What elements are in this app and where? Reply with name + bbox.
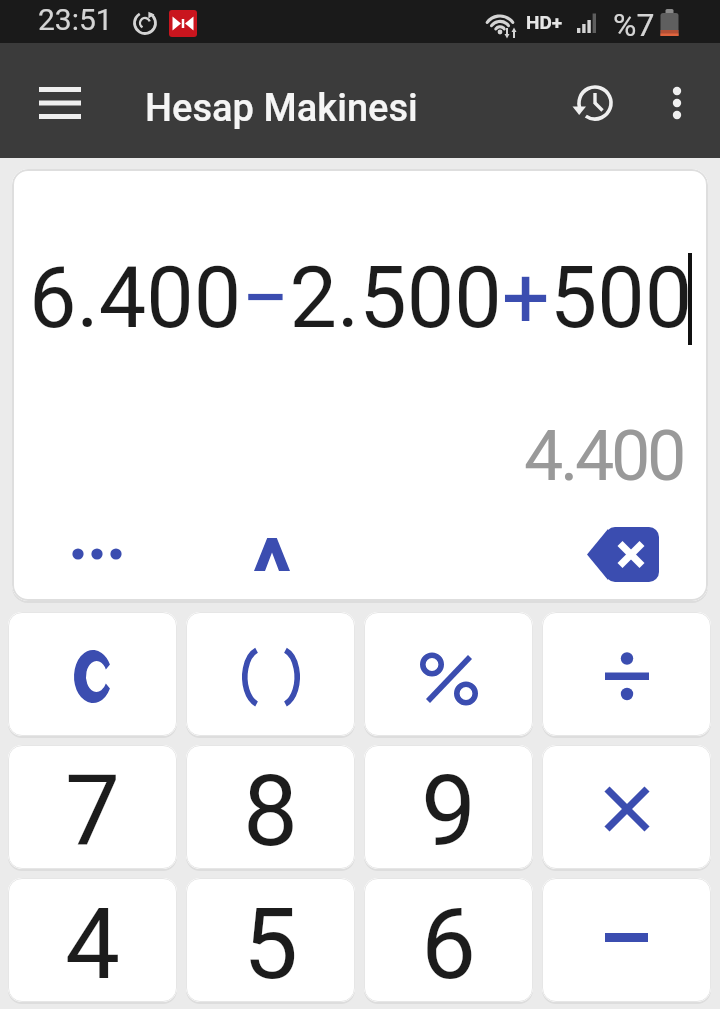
button[interactable] bbox=[8, 612, 177, 736]
staticText: 23:51 bbox=[38, 2, 113, 37]
button[interactable] bbox=[237, 519, 307, 589]
button[interactable] bbox=[25, 68, 95, 138]
staticText: HD+ bbox=[526, 11, 563, 33]
staticText: 4.400 bbox=[524, 415, 683, 497]
staticText: 6 bbox=[421, 887, 477, 1002]
button[interactable]: 4 bbox=[8, 878, 177, 1002]
button[interactable] bbox=[542, 612, 711, 736]
button[interactable]: 5 bbox=[186, 878, 355, 1002]
staticText: Hesap Makinesi bbox=[145, 86, 418, 131]
staticText: 7 bbox=[65, 754, 121, 869]
button[interactable]: 6 bbox=[364, 878, 533, 1002]
button[interactable] bbox=[364, 612, 533, 736]
staticText: 6.400−2.500+500 bbox=[29, 249, 693, 348]
button[interactable] bbox=[186, 612, 355, 736]
button[interactable] bbox=[542, 878, 711, 1002]
button[interactable] bbox=[542, 745, 711, 869]
button[interactable] bbox=[559, 68, 629, 138]
button[interactable] bbox=[647, 68, 707, 138]
button[interactable] bbox=[39, 524, 154, 584]
button[interactable]: 8 bbox=[186, 745, 355, 869]
staticText: 5 bbox=[243, 887, 299, 1002]
staticText: 9 bbox=[421, 754, 477, 869]
staticText: %7 bbox=[613, 6, 655, 44]
button[interactable]: 7 bbox=[8, 745, 177, 869]
staticText: 4 bbox=[65, 887, 121, 1002]
staticText: 8 bbox=[243, 754, 299, 869]
button[interactable]: 9 bbox=[364, 745, 533, 869]
button[interactable] bbox=[568, 514, 678, 594]
